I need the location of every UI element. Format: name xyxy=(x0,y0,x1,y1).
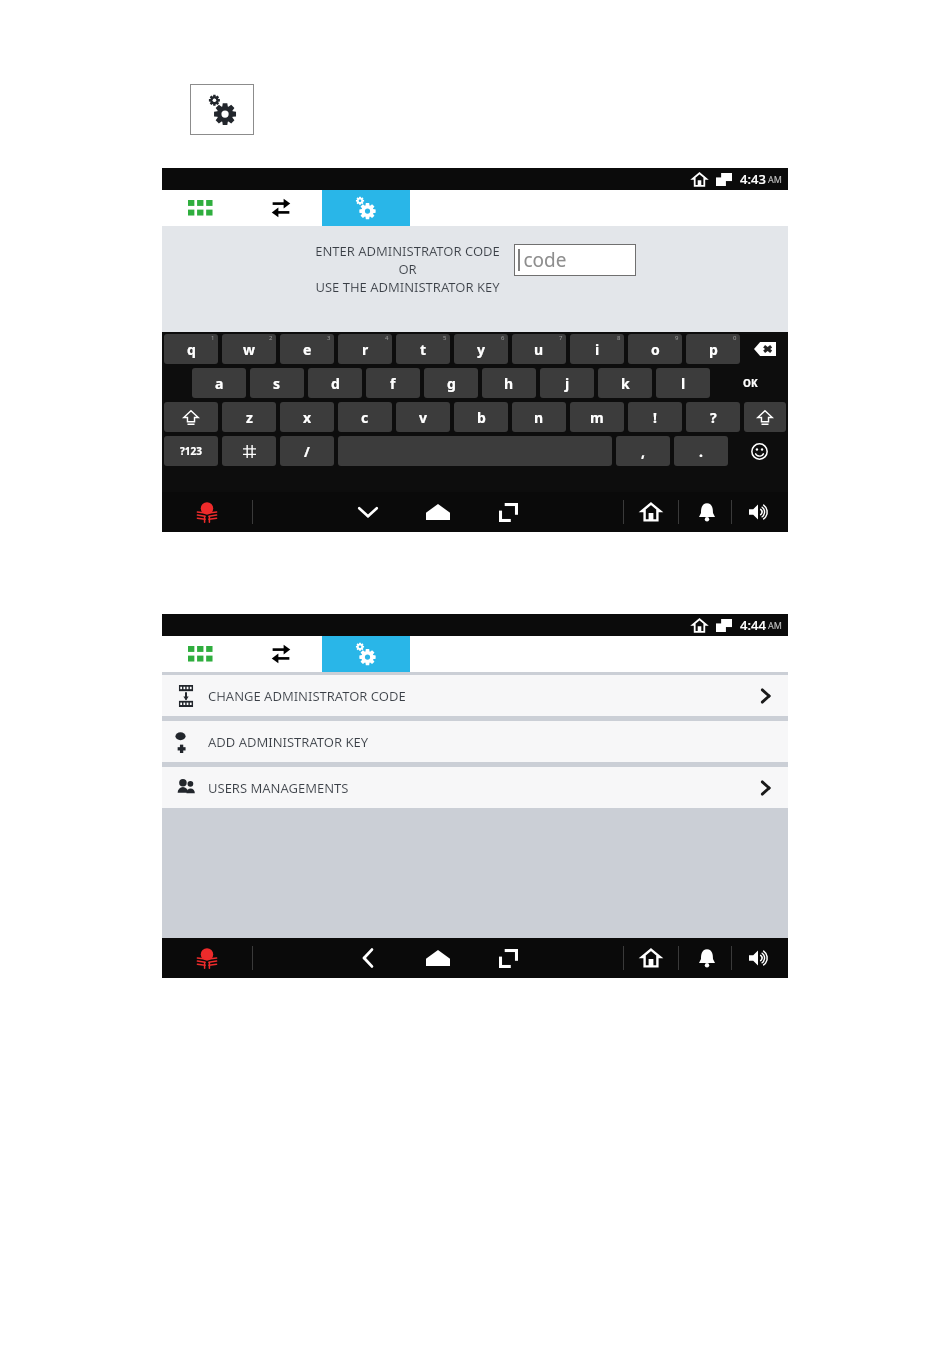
button[interactable]: e xyxy=(280,334,334,364)
staticText: h xyxy=(504,374,514,393)
button[interactable]: r xyxy=(338,334,392,364)
button[interactable]: Apps xyxy=(162,636,240,672)
staticText: 6 xyxy=(501,334,505,342)
button[interactable]: w xyxy=(222,334,276,364)
button[interactable]: Alerts xyxy=(679,492,731,532)
staticText: j xyxy=(565,374,570,393)
button[interactable]: Octopus xyxy=(162,938,252,978)
button[interactable]: s xyxy=(250,368,304,398)
button[interactable]: h xyxy=(482,368,536,398)
button[interactable]: Shift xyxy=(744,402,786,432)
staticText: b xyxy=(477,408,486,427)
button[interactable]: Shift xyxy=(164,402,218,432)
button[interactable]: Octopus xyxy=(162,492,252,532)
button[interactable]: Transfer xyxy=(240,190,322,226)
staticText: . xyxy=(699,442,703,461)
staticText: ?123 xyxy=(180,444,202,458)
button[interactable]: i xyxy=(570,334,624,364)
staticText: 4:44 xyxy=(740,616,766,634)
staticText: p xyxy=(709,340,718,359)
staticText: i xyxy=(595,340,600,359)
button[interactable]: Transfer xyxy=(240,636,322,672)
staticText: AM xyxy=(768,173,782,185)
button[interactable]: code xyxy=(514,244,636,276)
button[interactable]: / xyxy=(280,436,334,466)
button[interactable]: Hide keyboard xyxy=(342,492,394,532)
button[interactable]: Settings xyxy=(190,84,254,135)
staticText: CHANGE ADMINISTRATOR CODE xyxy=(208,687,406,705)
staticText: e xyxy=(303,340,312,359)
button[interactable]: Settings tab xyxy=(322,636,410,672)
button[interactable]: Back xyxy=(342,938,394,978)
staticText: s xyxy=(273,374,281,393)
staticText: ? xyxy=(710,408,717,427)
staticText: n xyxy=(534,408,544,427)
button[interactable]: a xyxy=(192,368,246,398)
button[interactable]: Apps xyxy=(162,190,240,226)
staticText: q xyxy=(187,340,196,359)
button[interactable]: k xyxy=(598,368,652,398)
button[interactable]: Backspace xyxy=(744,334,786,364)
button[interactable]: y xyxy=(454,334,508,364)
button[interactable]: Volume xyxy=(732,938,788,978)
staticText: o xyxy=(651,340,660,359)
button[interactable]: ! xyxy=(628,402,682,432)
button[interactable]: Home screen xyxy=(624,938,678,978)
button[interactable]: Volume xyxy=(732,492,788,532)
button[interactable]: j xyxy=(540,368,594,398)
button[interactable]: q xyxy=(164,334,218,364)
staticText: w xyxy=(243,340,255,359)
staticText: f xyxy=(390,374,396,393)
button[interactable]: USERS MANAGEMENTS xyxy=(162,767,788,808)
button[interactable]: b xyxy=(454,402,508,432)
button[interactable]: CHANGE ADMINISTRATOR CODE xyxy=(162,675,788,716)
button[interactable]: Emoji xyxy=(732,436,786,466)
button[interactable]: Recents xyxy=(482,492,534,532)
button[interactable]: . xyxy=(674,436,728,466)
staticText: 4 xyxy=(385,334,389,342)
staticText: OR xyxy=(398,260,417,278)
button[interactable]: p xyxy=(686,334,740,364)
button[interactable]: , xyxy=(616,436,670,466)
button[interactable] xyxy=(222,436,276,466)
staticText: 7 xyxy=(559,334,563,342)
button[interactable]: ?123 xyxy=(164,436,218,466)
button[interactable]: v xyxy=(396,402,450,432)
button[interactable]: x xyxy=(280,402,334,432)
staticText: / xyxy=(304,442,310,461)
button[interactable]: Recents xyxy=(482,938,534,978)
button[interactable]: Home xyxy=(412,938,464,978)
button[interactable]: ADD ADMINISTRATOR KEY xyxy=(162,721,788,762)
button[interactable]: o xyxy=(628,334,682,364)
staticText: 5 xyxy=(443,334,447,342)
staticText: USERS MANAGEMENTS xyxy=(208,779,349,797)
staticText: 3 xyxy=(327,334,331,342)
staticText: 2 xyxy=(269,334,273,342)
button[interactable]: n xyxy=(512,402,566,432)
button[interactable]: Home screen xyxy=(624,492,678,532)
button[interactable]: u xyxy=(512,334,566,364)
staticText: z xyxy=(246,408,253,427)
button[interactable]: d xyxy=(308,368,362,398)
button[interactable]: f xyxy=(366,368,420,398)
button[interactable]: OK xyxy=(714,368,786,398)
staticText: r xyxy=(362,340,369,359)
staticText: m xyxy=(590,408,604,427)
button[interactable]: z xyxy=(222,402,276,432)
staticText: 8 xyxy=(617,334,621,342)
button[interactable]: c xyxy=(338,402,392,432)
button[interactable]: Settings tab xyxy=(322,190,410,226)
button[interactable]: l xyxy=(656,368,710,398)
staticText: ! xyxy=(653,408,657,427)
button[interactable]: g xyxy=(424,368,478,398)
staticText: , xyxy=(641,442,645,461)
staticText: a xyxy=(215,374,224,393)
button[interactable]: Home xyxy=(412,492,464,532)
staticText: OK xyxy=(743,376,758,390)
button[interactable]: Alerts xyxy=(679,938,731,978)
button[interactable]: m xyxy=(570,402,624,432)
staticText: code xyxy=(523,247,567,273)
button[interactable]: t xyxy=(396,334,450,364)
button[interactable]: ? xyxy=(686,402,740,432)
